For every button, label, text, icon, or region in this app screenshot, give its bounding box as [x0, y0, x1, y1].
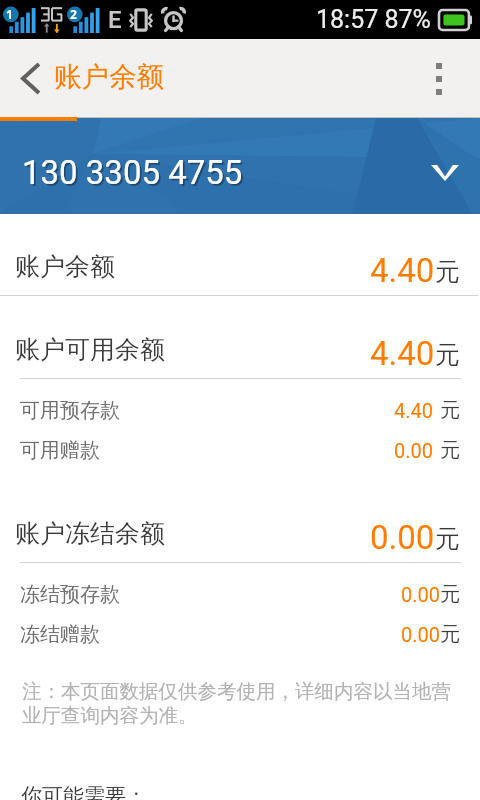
- staticText: 元: [435, 339, 460, 370]
- staticText: 注：本页面数据仅供参考使用，详细内容以当地营业厅查询内容为准。: [22, 679, 455, 728]
- staticText: 可用赠款: [20, 438, 100, 463]
- staticText: 元: [440, 398, 460, 423]
- button[interactable]: 账户可用余额: [0, 323, 480, 375]
- staticText: 可用预存款: [20, 398, 120, 423]
- staticText: 元: [440, 622, 460, 647]
- staticText: 0.00: [401, 623, 440, 646]
- staticText: 元: [440, 438, 460, 463]
- button[interactable]: 可用预存款: [0, 390, 480, 430]
- staticText: 元: [435, 523, 460, 554]
- staticText: 130 3305 4755: [24, 155, 245, 194]
- staticText: 18:57 87%: [316, 5, 431, 34]
- staticText: 4.40: [370, 334, 435, 373]
- staticText: 2: [70, 6, 77, 22]
- staticText: 账户余额: [54, 60, 164, 95]
- staticText: E: [108, 6, 122, 34]
- staticText: 元: [440, 582, 460, 607]
- staticText: 1: [6, 6, 13, 22]
- staticText: 账户余额: [15, 251, 115, 282]
- staticText: 账户冻结余额: [15, 518, 165, 549]
- button[interactable]: 冻结预存款: [0, 574, 480, 614]
- button[interactable]: Back: [0, 39, 54, 118]
- other: Switch account: [431, 165, 459, 181]
- staticText: 0.00: [394, 439, 433, 462]
- button[interactable]: 冻结赠款: [0, 614, 480, 654]
- staticText: 130 3305 4755: [22, 153, 243, 192]
- button[interactable]: 130 3305 4755: [0, 118, 480, 214]
- staticText: 0.00: [401, 583, 440, 606]
- staticText: 冻结赠款: [20, 622, 100, 647]
- staticText: 冻结预存款: [20, 582, 120, 607]
- staticText: 你可能需要：: [21, 783, 147, 800]
- staticText: 账户可用余额: [15, 334, 165, 365]
- button[interactable]: More options: [422, 39, 480, 118]
- button[interactable]: 可用赠款: [0, 430, 480, 470]
- staticText: 4.40: [394, 399, 433, 422]
- staticText: 4.40: [370, 251, 435, 290]
- staticText: 元: [435, 256, 460, 287]
- staticText: 0.00: [370, 518, 435, 557]
- button[interactable]: 账户冻结余额: [0, 507, 480, 559]
- button[interactable]: 账户余额: [0, 240, 480, 292]
